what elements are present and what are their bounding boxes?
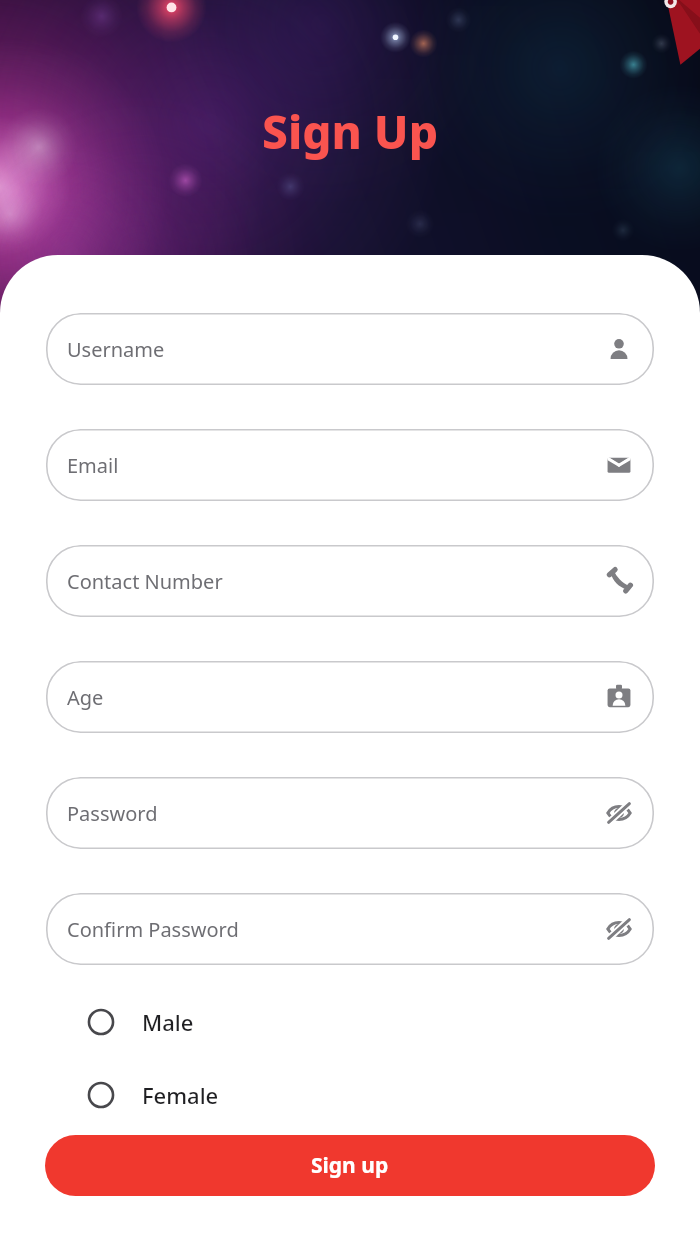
other: Email xyxy=(604,450,634,480)
other: Contact number xyxy=(604,566,634,596)
button[interactable]: Sign up xyxy=(45,1135,655,1196)
button[interactable]: Male xyxy=(45,997,655,1047)
other: Show password xyxy=(604,798,634,828)
button[interactable]: Contact Number xyxy=(45,545,655,617)
staticText: Sign Up xyxy=(0,100,700,163)
staticText: Confirm Password xyxy=(67,916,239,943)
staticText: Username xyxy=(67,336,165,363)
button[interactable]: Age xyxy=(45,661,655,733)
staticText: Email xyxy=(67,452,119,479)
other: Age xyxy=(604,682,634,712)
other: Username xyxy=(604,334,634,364)
button[interactable]: Female xyxy=(45,1070,655,1120)
staticText: Sign up xyxy=(311,1151,389,1180)
staticText: Male xyxy=(142,1007,194,1037)
other: Show confirm password xyxy=(604,914,634,944)
button[interactable]: Email xyxy=(45,429,655,501)
staticText: Contact Number xyxy=(67,568,223,595)
staticText: Age xyxy=(67,684,104,711)
button[interactable]: Password xyxy=(45,777,655,849)
staticText: Password xyxy=(67,800,158,827)
button[interactable]: Confirm Password xyxy=(45,893,655,965)
button[interactable]: Username xyxy=(45,313,655,385)
staticText: Female xyxy=(142,1080,219,1110)
